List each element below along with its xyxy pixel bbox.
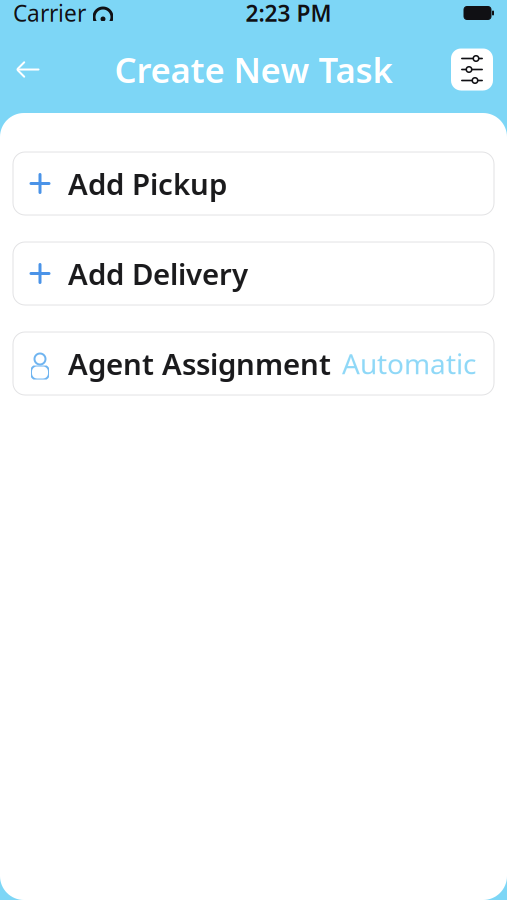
button[interactable]: Agent Assignment <box>13 332 494 395</box>
button[interactable]: Add Delivery <box>13 242 494 305</box>
staticText: Add Delivery <box>68 254 248 293</box>
staticText: Add Pickup <box>68 164 227 203</box>
button[interactable]: Back <box>0 41 56 97</box>
staticText: 2:23 PM <box>245 0 331 28</box>
staticText: Carrier <box>13 0 86 28</box>
button[interactable]: Add Pickup <box>13 152 494 215</box>
button[interactable]: Filter <box>451 48 493 90</box>
staticText: Automatic <box>342 345 476 382</box>
staticText: Agent Assignment <box>68 344 331 383</box>
staticText: Create New Task <box>114 46 392 92</box>
